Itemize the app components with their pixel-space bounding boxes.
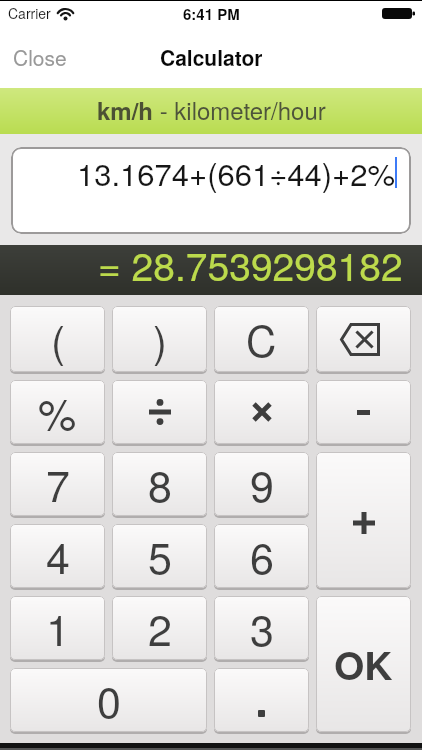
staticText: C (246, 309, 277, 369)
staticText: 6 (250, 525, 274, 587)
staticText: 4 (46, 525, 70, 587)
staticText: 0 (97, 669, 121, 731)
button[interactable]: Close (13, 42, 67, 72)
staticText: 5 (148, 525, 172, 587)
staticText: 1 (46, 597, 70, 659)
staticText: 8 (148, 453, 172, 515)
staticText: 9 (250, 453, 274, 515)
staticText: 13.1674+(661÷44)+2% (77, 150, 395, 194)
button[interactable]: 6 (214, 524, 309, 590)
button[interactable]: 3 (214, 596, 309, 662)
staticText: 7 (46, 453, 70, 515)
button[interactable]: 2 (112, 596, 207, 662)
button[interactable] (316, 380, 411, 446)
button[interactable]: 4 (10, 524, 105, 590)
button[interactable] (214, 668, 309, 734)
button[interactable]: OK (316, 596, 411, 734)
button[interactable]: C (214, 306, 309, 374)
button[interactable]: % (10, 380, 105, 446)
staticText: = 28.7539298182 (98, 236, 403, 286)
button[interactable]: ( (10, 306, 105, 374)
staticText: ( (51, 309, 65, 369)
staticText: Calculator (160, 42, 263, 72)
button[interactable] (112, 380, 207, 446)
staticText: 3 (250, 597, 274, 659)
staticText: km/h - kilometer/hour (97, 92, 326, 127)
staticText: OK (334, 636, 393, 692)
button[interactable]: 0 (10, 668, 207, 734)
staticText: ) (153, 309, 167, 369)
button[interactable]: 9 (214, 452, 309, 518)
button[interactable] (316, 306, 411, 374)
staticText: 6:41 PM (183, 3, 240, 24)
button[interactable] (316, 452, 411, 590)
button[interactable]: 1 (10, 596, 105, 662)
staticText: Carrier (8, 3, 51, 23)
staticText: 2 (148, 597, 172, 659)
button[interactable]: 7 (10, 452, 105, 518)
button[interactable]: ) (112, 306, 207, 374)
button[interactable] (214, 380, 309, 446)
button[interactable]: 5 (112, 524, 207, 590)
button[interactable]: 8 (112, 452, 207, 518)
button[interactable]: km/h - kilometer/hour (0, 88, 422, 134)
staticText: % (38, 381, 77, 443)
